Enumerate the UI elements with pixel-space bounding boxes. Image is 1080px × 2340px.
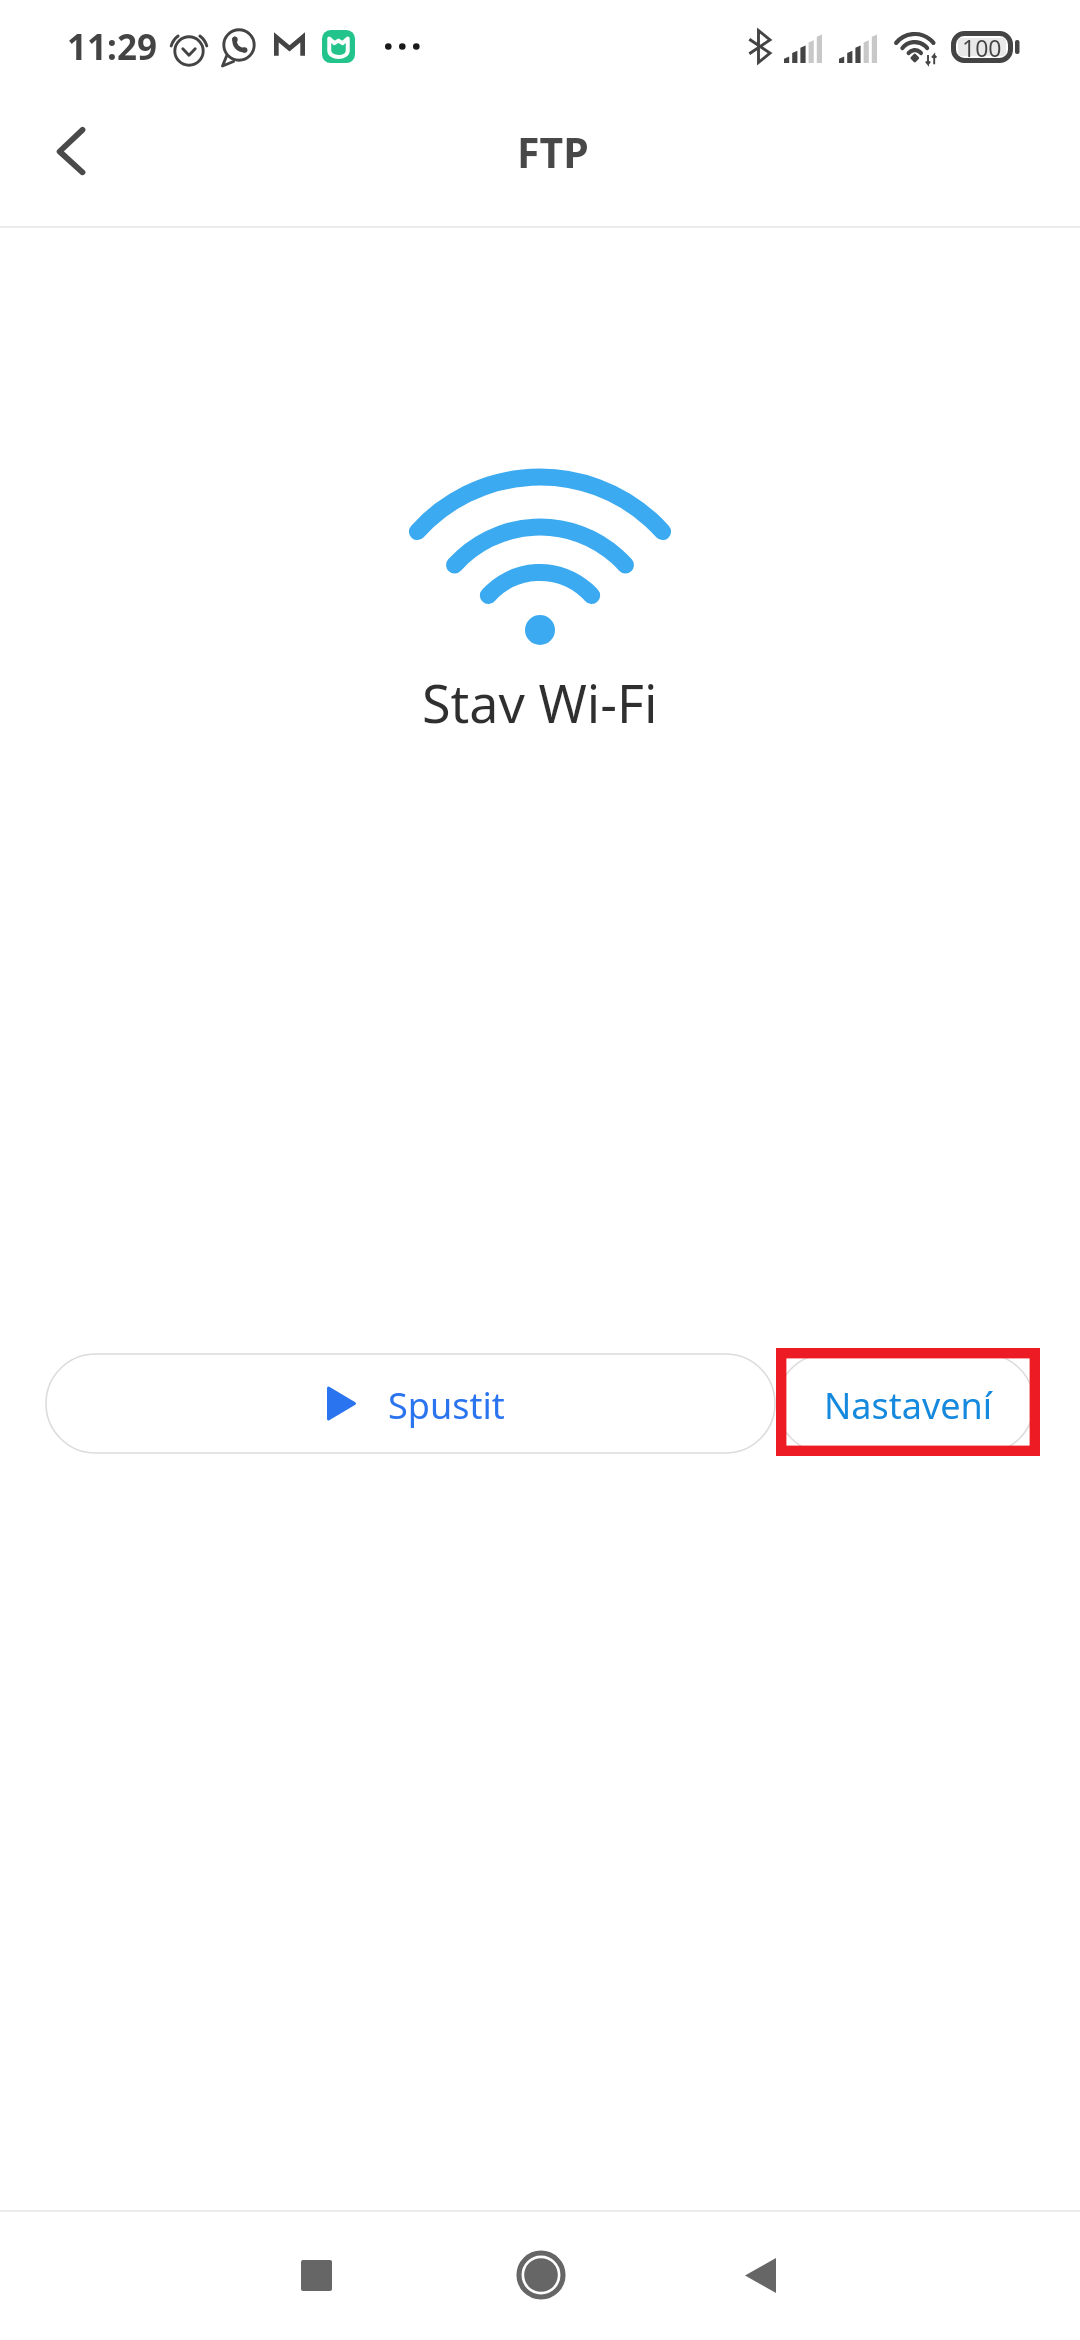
staticText: 11:29 <box>67 23 157 71</box>
staticText: Spustit <box>388 1381 505 1430</box>
button[interactable]: Back <box>26 107 116 197</box>
staticText: FTP <box>517 124 589 180</box>
staticText: Stav Wi-Fi <box>422 667 658 738</box>
staticText: 100 <box>962 32 1002 63</box>
button[interactable]: Home <box>481 2215 601 2335</box>
button[interactable]: Back <box>700 2215 820 2335</box>
button[interactable]: Spustit <box>45 1353 776 1454</box>
button[interactable]: Nastavení <box>776 1353 1035 1454</box>
staticText: Nastavení <box>824 1381 993 1430</box>
button[interactable]: Recent apps <box>256 2215 376 2335</box>
